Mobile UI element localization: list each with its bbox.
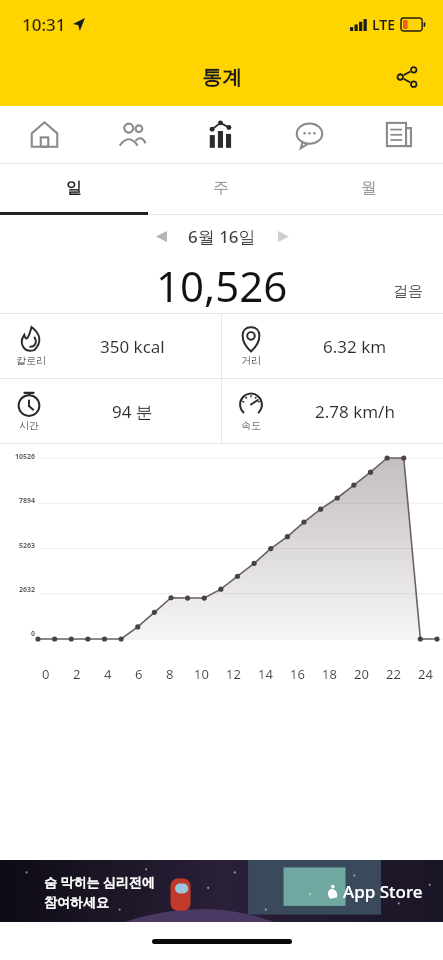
- button[interactable]: 시간: [0, 379, 221, 443]
- staticText: 속도: [241, 419, 261, 432]
- staticText: 6.32 km: [323, 335, 387, 358]
- staticText: LTE: [372, 15, 396, 34]
- staticText: 2632: [19, 585, 36, 595]
- staticText: 12: [226, 665, 241, 683]
- staticText: 22: [386, 665, 401, 683]
- staticText: 숨 막히는 심리전에: [44, 873, 155, 891]
- staticText: 6월 16일: [188, 225, 256, 248]
- staticText: 참여하세요: [44, 894, 109, 910]
- button[interactable]: 주: [147, 164, 295, 212]
- staticText: 월: [361, 178, 377, 198]
- staticText: 16: [290, 665, 305, 683]
- staticText: 8: [166, 665, 174, 683]
- button[interactable]: 일: [0, 164, 147, 212]
- staticText: 18: [322, 665, 337, 683]
- staticText: 걸음: [393, 282, 423, 301]
- button[interactable]: 거리: [222, 314, 443, 378]
- staticText: App Store: [343, 880, 423, 903]
- staticText: 일: [66, 178, 82, 198]
- staticText: 10,526: [156, 257, 288, 313]
- staticText: 14: [258, 665, 273, 683]
- staticText: 5263: [19, 541, 36, 551]
- staticText: 시간: [19, 419, 39, 432]
- staticText: 0: [31, 629, 36, 639]
- staticText: 24: [418, 665, 433, 683]
- button[interactable]: Next day: [266, 219, 300, 253]
- staticText: 10: [194, 665, 209, 683]
- staticText: 2.78 km/h: [315, 400, 395, 423]
- staticText: 10526: [15, 452, 36, 462]
- staticText: 7894: [19, 496, 36, 506]
- button[interactable]: 월: [295, 164, 443, 212]
- button[interactable]: Friends: [88, 106, 176, 163]
- staticText: 10:31: [22, 13, 66, 36]
- staticText: 거리: [241, 354, 261, 367]
- staticText: 350 kcal: [100, 335, 165, 358]
- button[interactable]: Chat: [265, 106, 354, 163]
- staticText: 주: [213, 178, 229, 198]
- staticText: 4: [104, 665, 112, 683]
- button[interactable]: Share: [385, 55, 429, 99]
- staticText: 0: [42, 665, 50, 683]
- button[interactable]: 숨 막히는 심리전에: [0, 860, 443, 922]
- staticText: 6: [135, 665, 143, 683]
- button[interactable]: 속도: [222, 379, 443, 443]
- button[interactable]: Statistics: [176, 106, 265, 163]
- button[interactable]: Home: [0, 106, 88, 163]
- staticText: 통계: [202, 65, 242, 90]
- staticText: 칼로리: [16, 354, 46, 367]
- button[interactable]: 칼로리: [0, 314, 221, 378]
- button[interactable]: Previous day: [144, 219, 178, 253]
- button[interactable]: News: [354, 106, 443, 163]
- staticText: 20: [354, 665, 369, 683]
- staticText: 2: [73, 665, 81, 683]
- staticText: 94 분: [112, 400, 153, 423]
